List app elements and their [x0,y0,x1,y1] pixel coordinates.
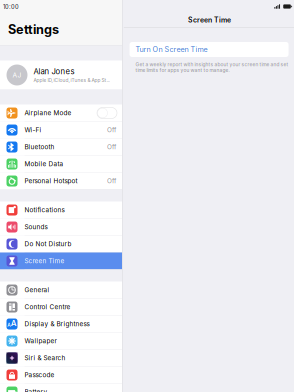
button[interactable]: Personal Hotspot [0,172,122,189]
button[interactable]: Passcode [0,366,122,383]
button[interactable]: Siri & Search [0,349,122,366]
staticText: Notifications [24,206,64,214]
button[interactable]: Bluetooth [0,138,122,155]
button[interactable]: Battery [0,383,122,392]
staticText: AJ [12,71,21,79]
staticText: Wallpaper [24,337,56,345]
button[interactable]: Wi-Fi [0,121,122,138]
button[interactable]: Notifications [0,201,122,218]
button[interactable]: Wallpaper [0,332,122,349]
staticText: Settings [8,22,59,37]
button[interactable]: A [0,315,122,332]
staticText: Wi-Fi [24,126,41,134]
button[interactable]: Mobile Data [0,155,122,172]
staticText: Mobile Data [24,160,63,168]
staticText: Screen Time [188,16,231,24]
button[interactable]: Screen Time [0,252,122,269]
staticText: Personal Hotspot [24,177,77,185]
staticText: Passcode [24,371,54,379]
staticText: Battery [24,388,47,392]
staticText: General [24,286,49,294]
staticText: Siri & Search [24,354,65,362]
staticText: Sounds [24,223,47,231]
button[interactable]: Sounds [0,218,122,235]
staticText: Off [107,143,116,151]
staticText: Control Centre [24,303,70,311]
button[interactable]: AJ [0,60,122,89]
staticText: A [7,322,10,328]
staticText: Do Not Disturb [24,240,71,248]
staticText: Screen Time [24,257,64,265]
staticText: Apple ID, iCloud, iTunes & App St... [33,77,109,83]
staticText: Bluetooth [24,143,54,151]
staticText: Airplane Mode [24,109,71,117]
staticText: Display & Brightness [24,320,89,328]
staticText: Off [107,126,116,134]
button[interactable]: General [0,281,122,298]
button[interactable]: Airplane Mode [0,104,122,121]
button[interactable]: Control Centre [0,298,122,315]
staticText: 10:00 [3,4,19,10]
button[interactable]: Turn On Screen Time [130,42,289,57]
staticText: Get a weekly report with insights about … [136,61,289,73]
staticText: Alan Jones [33,67,74,76]
staticText: Turn On Screen Time [136,45,208,54]
staticText: A [11,318,17,328]
button[interactable]: Do Not Disturb [0,235,122,252]
staticText: Off [107,177,116,185]
